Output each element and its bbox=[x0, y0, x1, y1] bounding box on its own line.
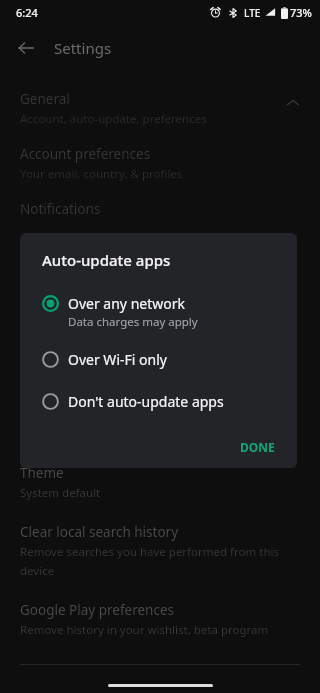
staticText: 73% bbox=[290, 5, 312, 20]
staticText: Your email, country, & profiles bbox=[20, 166, 183, 182]
staticText: Google Play preferences bbox=[20, 601, 174, 619]
button[interactable]: Over any network bbox=[20, 288, 297, 336]
staticText: Account, auto-update, preferences bbox=[20, 111, 207, 127]
staticText: Theme bbox=[20, 464, 64, 482]
staticText: 6:24 bbox=[16, 5, 38, 20]
staticText: Remove history in your wishlist, beta pr… bbox=[20, 622, 269, 638]
staticText: device bbox=[20, 563, 55, 579]
staticText: Auto-update apps bbox=[42, 250, 171, 270]
button[interactable]: Google Play preferences bbox=[0, 601, 320, 638]
staticText: Don't auto-update apps bbox=[68, 392, 224, 411]
button[interactable]: Theme bbox=[0, 464, 320, 501]
staticText: Clear local search history bbox=[20, 523, 179, 541]
staticText: General bbox=[20, 90, 70, 108]
staticText: Remove searches you have performed from … bbox=[20, 544, 279, 560]
button[interactable]: DONE bbox=[230, 433, 285, 461]
staticText: Account preferences bbox=[20, 145, 151, 163]
staticText: System default bbox=[20, 485, 101, 501]
staticText: Over Wi-Fi only bbox=[68, 350, 167, 369]
button[interactable]: Clear local search history bbox=[0, 523, 320, 579]
button[interactable]: Account preferences bbox=[0, 145, 320, 182]
staticText: Settings bbox=[54, 38, 112, 58]
button[interactable]: Notifications bbox=[0, 200, 320, 218]
staticText: Data charges may apply bbox=[68, 314, 198, 330]
staticText: Over any network bbox=[68, 294, 185, 313]
button[interactable]: Over Wi-Fi only bbox=[20, 344, 297, 375]
button[interactable]: Don't auto-update apps bbox=[20, 386, 297, 417]
staticText: LTE bbox=[244, 6, 261, 20]
button[interactable]: General bbox=[0, 90, 320, 127]
staticText: Notifications bbox=[20, 200, 101, 218]
staticText: DONE bbox=[240, 439, 275, 455]
button[interactable]: Back bbox=[10, 32, 42, 64]
